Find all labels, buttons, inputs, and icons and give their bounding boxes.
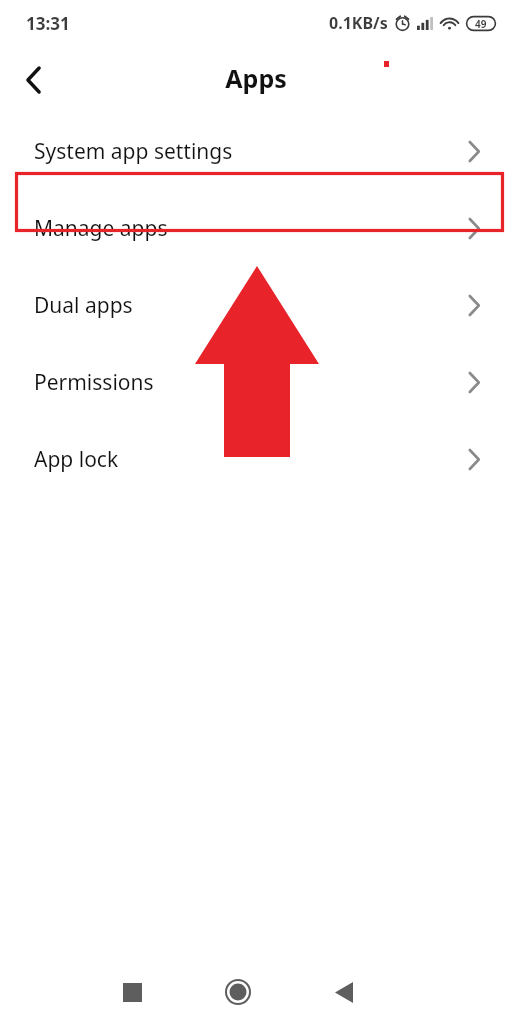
staticText: 49 [475, 17, 487, 31]
button[interactable]: Permissions [0, 344, 512, 421]
staticText: 0.1KB/s [329, 12, 388, 34]
staticText: Apps [225, 61, 287, 95]
button[interactable]: Dual apps [0, 267, 512, 344]
button[interactable]: Home [212, 966, 264, 1018]
staticText: 13:31 [26, 12, 70, 35]
button[interactable]: App lock [0, 421, 512, 498]
staticText: Dual apps [34, 291, 133, 320]
button[interactable]: Recent apps [106, 966, 158, 1018]
staticText: Permissions [34, 368, 154, 397]
button[interactable]: Back [318, 966, 370, 1018]
button[interactable]: System app settings [0, 113, 512, 190]
button[interactable]: Back [8, 54, 60, 106]
staticText: System app settings [34, 137, 233, 166]
button[interactable]: Manage apps [0, 190, 512, 267]
staticText: App lock [34, 445, 119, 474]
staticText: Manage apps [34, 214, 168, 243]
